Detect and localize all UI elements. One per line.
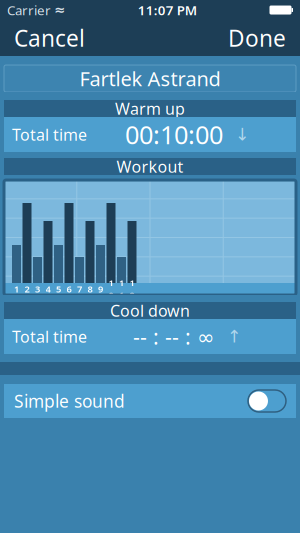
staticText: 2 xyxy=(24,283,29,295)
staticText: 00:10:00 xyxy=(125,118,223,151)
staticText: 4 xyxy=(45,283,50,295)
staticText: 7 xyxy=(77,283,82,295)
staticText: Simple sound xyxy=(14,389,125,412)
staticText: Total time xyxy=(12,326,87,347)
staticText: 9 xyxy=(98,283,103,295)
staticText: 6 xyxy=(66,283,71,295)
staticText: Fartlek Astrand xyxy=(79,65,220,92)
staticText: Warm up xyxy=(115,98,185,119)
staticText: 1 xyxy=(14,283,19,295)
button[interactable]: Total time xyxy=(4,319,296,354)
staticText: Workout xyxy=(116,156,183,177)
staticText: 11:07 PM xyxy=(138,1,197,19)
button[interactable]: Cancel xyxy=(6,17,93,59)
staticText: ≈ xyxy=(54,2,65,17)
staticText: Done xyxy=(228,23,286,53)
staticText: ↓ xyxy=(223,125,250,144)
staticText: 3 xyxy=(35,283,40,295)
staticText: Cancel xyxy=(14,23,85,53)
button[interactable]: Simple sound xyxy=(4,384,296,418)
staticText: Cool down xyxy=(110,300,190,321)
button[interactable]: Fartlek Astrand xyxy=(4,65,296,92)
staticText: 5 xyxy=(56,283,61,295)
staticText: ↑ xyxy=(215,327,242,346)
staticText: -- : -- : ∞ xyxy=(133,322,215,351)
staticText: 12 xyxy=(129,277,134,301)
staticText: Total time xyxy=(12,124,87,145)
button[interactable]: Total time xyxy=(4,117,296,152)
staticText: 10 xyxy=(108,277,113,301)
staticText: 8 xyxy=(87,283,92,295)
staticText: Carrier xyxy=(7,1,54,19)
staticText: 11 xyxy=(119,277,124,301)
button[interactable]: Done xyxy=(220,17,294,59)
